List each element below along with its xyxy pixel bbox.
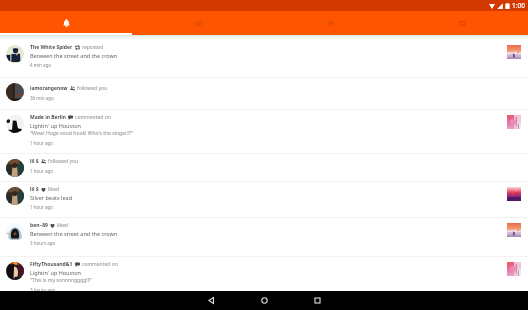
button[interactable]: Back: [185, 291, 238, 310]
staticText: iamorangenow: [30, 85, 68, 92]
button[interactable]: lil $: [0, 154, 528, 181]
staticText: liked: [48, 186, 60, 193]
staticText: Made in Berlin: [30, 114, 66, 121]
staticText: 4 min ago: [30, 62, 52, 68]
button[interactable]: ben~89: [0, 218, 528, 256]
staticText: Between the street and the crown: [30, 230, 118, 237]
staticText: Silver beats lead: [30, 194, 73, 201]
staticText: 1 hour ago: [30, 204, 54, 210]
staticText: “This is my sonnnngggg!!!”: [30, 277, 93, 284]
staticText: followed you: [48, 158, 79, 165]
staticText: 1:00: [512, 1, 525, 10]
button[interactable]: Recents: [291, 291, 344, 310]
staticText: “Wow! Huge vocal hook! Who's the singer?…: [30, 130, 134, 137]
staticText: 3 hours ago: [30, 240, 56, 246]
button[interactable]: iamorangenow: [0, 78, 528, 109]
staticText: 3 hours ago: [30, 287, 56, 293]
staticText: lil $: [30, 186, 39, 193]
staticText: commented on: [75, 114, 111, 121]
staticText: lil $: [30, 158, 39, 165]
staticText: 36 min ago: [30, 95, 54, 101]
staticText: Between the street and the crown: [30, 52, 118, 59]
staticText: FiftyThousand&1: [30, 261, 73, 268]
button[interactable]: FiftyThousand&1: [0, 257, 528, 310]
staticText: ben~89: [30, 222, 48, 229]
staticText: liked: [57, 222, 69, 229]
staticText: 1 hour ago: [30, 140, 54, 146]
staticText: Lightin' up Houston: [30, 122, 81, 129]
staticText: reposted: [82, 44, 103, 51]
button[interactable]: Notifications: [0, 11, 132, 35]
staticText: commented on: [82, 261, 118, 268]
staticText: Lightin' up Houston: [30, 269, 81, 276]
staticText: followed you: [77, 85, 108, 92]
button[interactable]: Made in Berlin: [0, 110, 528, 153]
staticText: 1 hour ago: [30, 168, 54, 174]
button[interactable]: The White Spider: [0, 40, 528, 77]
button[interactable]: Home: [238, 291, 291, 310]
button[interactable]: lil $: [0, 182, 528, 217]
staticText: The White Spider: [30, 44, 73, 51]
